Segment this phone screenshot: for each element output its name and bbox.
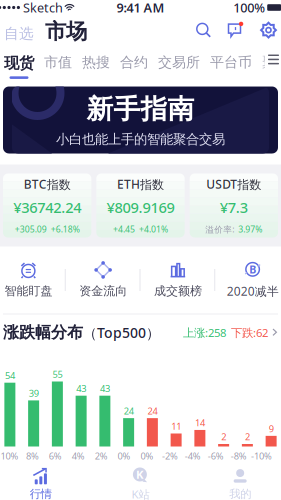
button[interactable]: 设置 [244, 22, 277, 39]
staticText: 39 [29, 387, 39, 399]
staticText: +4.45 [113, 223, 135, 235]
button[interactable]: 我的 [190, 468, 281, 500]
staticText: 14 [195, 416, 205, 429]
staticText: 新手指南 [86, 92, 194, 126]
staticText: 9 [269, 422, 274, 435]
staticText: 2 [221, 430, 226, 443]
staticText: B [249, 262, 256, 277]
staticText: 54 [5, 369, 15, 382]
staticText: 市值 [44, 53, 72, 71]
staticText: 9:41 AM [116, 0, 164, 16]
staticText: 4% [72, 449, 85, 462]
staticText: 市场 [45, 18, 87, 45]
staticText: 溢价率: [205, 223, 234, 235]
button[interactable]: 自选 [4, 24, 34, 43]
staticText: 现货 [4, 53, 34, 73]
staticText: 成交额榜 [154, 283, 202, 298]
staticText: 平台币 [210, 53, 252, 71]
staticText: ETH指数 [117, 176, 164, 192]
button[interactable]: 热搜 [72, 53, 110, 71]
staticText: 55 [52, 368, 62, 380]
button[interactable]: BTC指数 [3, 173, 91, 237]
staticText: 智能盯盘 [4, 283, 52, 298]
staticText: K [136, 467, 144, 482]
staticText: 24 [147, 404, 157, 417]
staticText: 自选 [4, 24, 34, 43]
button[interactable]: 聚合 [252, 53, 281, 71]
staticText: USDT指数 [206, 176, 261, 192]
staticText: 6% [49, 449, 62, 462]
staticText: ¥7.3 [220, 197, 248, 217]
staticText: 100% [233, 0, 265, 16]
staticText: 交易所 [158, 53, 200, 71]
staticText: -4% [185, 449, 201, 462]
staticText: ¥36742.24 [13, 197, 81, 217]
staticText: +4.01% [139, 223, 168, 235]
staticText: 8% [26, 449, 39, 462]
staticText: 0% [117, 449, 130, 462]
staticText: （Top500） [83, 323, 160, 342]
button[interactable]: 新手指南 [0, 76, 281, 153]
button[interactable]: 现货 [4, 53, 34, 79]
button[interactable]: USDT指数 [190, 173, 278, 237]
button[interactable]: 市值 [34, 53, 72, 71]
staticText: 下跌:62 [231, 325, 268, 340]
button[interactable]: 交易所 [148, 53, 200, 71]
staticText: -8% [231, 449, 247, 462]
staticText: 热搜 [82, 53, 110, 71]
staticText: 24 [124, 404, 134, 417]
staticText: K站 [131, 486, 149, 500]
staticText: 聚合 [262, 53, 281, 71]
staticText: 合约 [120, 53, 148, 71]
staticText: 小白也能上手的智能聚合交易 [56, 131, 225, 148]
staticText: 43 [76, 382, 86, 395]
button[interactable]: 搜索 [195, 22, 212, 39]
staticText: ¥809.9169 [106, 197, 174, 217]
button[interactable]: 上涨:258 [183, 325, 278, 340]
staticText: 2% [95, 449, 108, 462]
staticText: Sketch [20, 0, 63, 16]
staticText: -10% [251, 449, 272, 462]
staticText: 0% [140, 449, 153, 462]
staticText: +6.18% [51, 223, 80, 235]
staticText: BTC指数 [24, 176, 71, 192]
staticText: 43 [100, 382, 110, 395]
button[interactable]: 行情 [0, 468, 91, 500]
button[interactable]: 合约 [110, 53, 148, 71]
button[interactable]: 消息 [212, 22, 244, 39]
staticText: +305.09 [15, 223, 47, 235]
button[interactable]: 更多分类 [265, 46, 281, 70]
button[interactable]: 平台币 [200, 53, 252, 71]
staticText: -2% [162, 449, 178, 462]
staticText: 2020减半 [227, 283, 279, 299]
staticText: 资金流向 [79, 283, 127, 298]
staticText: 上涨:258 [183, 325, 226, 340]
staticText: 2 [245, 430, 250, 443]
button[interactable]: 成交额榜 [140, 261, 215, 298]
staticText: 3.97% [238, 223, 262, 235]
staticText: 我的 [229, 487, 251, 500]
staticText: -6% [208, 449, 224, 462]
button[interactable]: 市场 [34, 18, 87, 45]
button[interactable]: ETH指数 [96, 173, 185, 237]
button[interactable]: B [215, 261, 281, 299]
staticText: 11 [171, 420, 181, 432]
button[interactable]: K [91, 467, 190, 500]
button[interactable]: 资金流向 [66, 261, 141, 298]
button[interactable]: 智能盯盘 [0, 261, 66, 298]
staticText: 10% [0, 449, 18, 462]
staticText: 涨跌幅分布 [3, 322, 83, 343]
staticText: 行情 [30, 487, 52, 500]
